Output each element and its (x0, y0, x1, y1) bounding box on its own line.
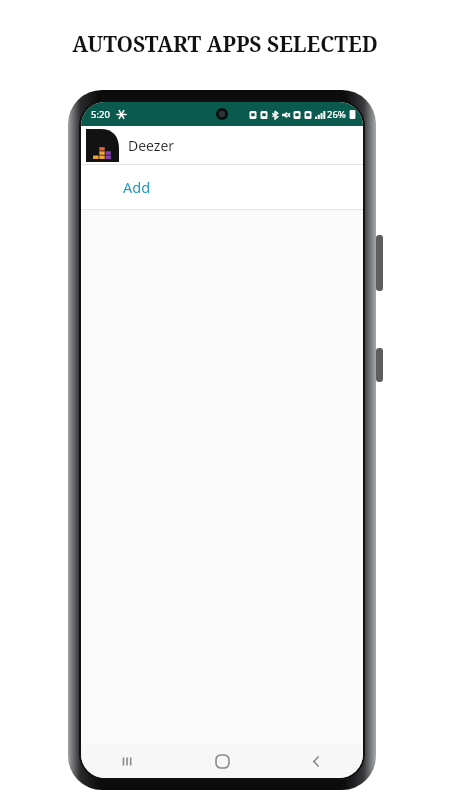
staticText: Deezer (128, 136, 175, 155)
staticText: AUTOSTART APPS SELECTED (72, 30, 378, 59)
staticText: 26% (327, 108, 346, 121)
button[interactable]: Deezer (81, 126, 363, 164)
staticText: Add (123, 177, 151, 197)
button[interactable]: Recent apps (81, 744, 175, 778)
staticText: 5:20 (91, 108, 110, 121)
button[interactable]: Back (269, 744, 363, 778)
button[interactable]: Home (175, 744, 269, 778)
button[interactable]: Add (81, 165, 363, 209)
